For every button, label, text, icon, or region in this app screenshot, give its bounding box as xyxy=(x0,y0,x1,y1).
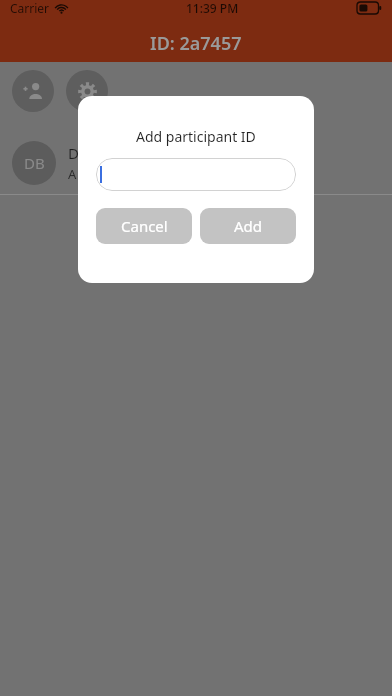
staticText: Carrier xyxy=(10,0,50,16)
staticText: ID: 2a7457 xyxy=(150,31,242,56)
staticText: DB xyxy=(24,153,45,173)
staticText: A few seconds ago xyxy=(68,165,182,183)
button[interactable]: Add xyxy=(200,208,296,244)
staticText: Cancel xyxy=(121,216,168,236)
button[interactable]: Add participant xyxy=(12,70,54,112)
button[interactable] xyxy=(96,158,296,191)
button[interactable]: Settings xyxy=(66,70,108,112)
staticText: 11:39 PM xyxy=(186,0,239,16)
staticText: Dr. Daniel Brooks xyxy=(68,143,189,163)
button[interactable]: Cancel xyxy=(96,208,192,244)
button[interactable]: DB xyxy=(0,132,392,194)
staticText: Add participant ID xyxy=(136,127,256,146)
staticText: Add xyxy=(234,216,263,236)
